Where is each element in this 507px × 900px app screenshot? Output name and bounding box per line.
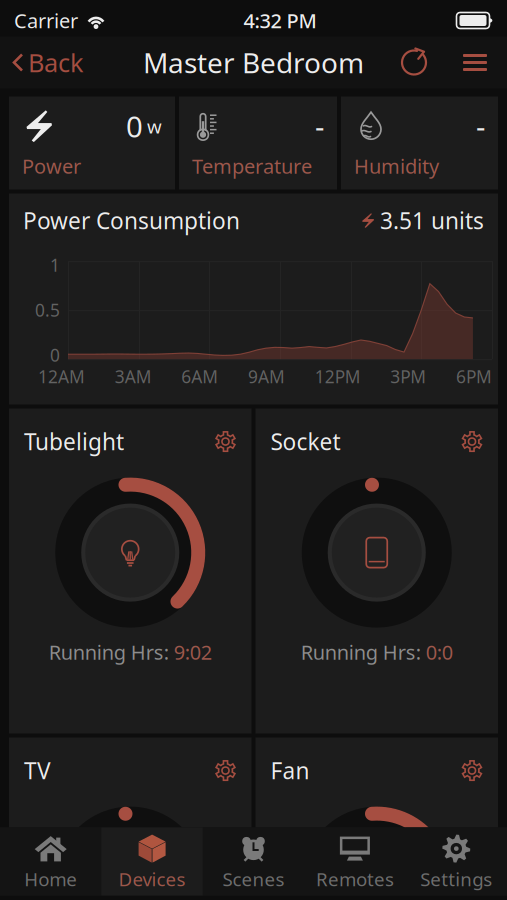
staticText: 1 [50,254,60,277]
staticText: - [315,107,324,146]
staticText: 9:02 [174,639,212,665]
staticText: Master Bedroom [143,44,364,81]
staticText: 3AM [115,365,152,388]
button[interactable]: - [179,96,337,189]
staticText: Remotes [316,867,394,891]
button[interactable]: Refresh [389,36,439,88]
staticText: 0:0 [426,639,453,665]
staticText: 6AM [181,365,218,388]
staticText: 6PM [456,365,492,388]
button[interactable]: Remotes [304,827,406,895]
staticText: w [147,114,162,139]
staticText: Scenes [222,867,284,891]
button[interactable]: Menu [453,36,497,88]
staticText: 3PM [390,365,426,388]
staticText: Power Consumption [23,205,240,236]
staticText: 0 [126,107,143,146]
button[interactable]: - [341,96,498,189]
button[interactable]: Devices [101,827,203,895]
button[interactable]: Tubelight settings [214,431,236,453]
staticText: Settings [420,867,492,891]
staticText: Tubelight [24,426,124,457]
staticText: Carrier [14,7,78,34]
staticText: 4:32 PM [243,7,316,34]
button[interactable]: Scenes [203,827,304,895]
staticText: Temperature [192,153,312,179]
staticText: Running Hrs: [301,639,421,665]
button[interactable]: Home [0,827,101,895]
staticText: 0.5 [35,299,60,322]
button[interactable]: Settings [406,827,507,895]
button[interactable]: Socket settings [461,431,483,453]
staticText: - [476,107,485,146]
staticText: TV [24,755,51,786]
button[interactable]: 0 [9,96,175,189]
staticText: Home [24,867,77,891]
button[interactable]: Back [0,36,96,88]
staticText: Running Hrs: [49,639,169,665]
staticText: 0 [50,344,60,367]
staticText: Humidity [354,153,439,179]
button[interactable]: Fan settings [461,760,483,782]
staticText: 3.51 units [380,205,484,236]
button[interactable]: TV settings [214,760,236,782]
staticText: Back [28,46,84,79]
staticText: Power [22,153,81,179]
staticText: 12AM [38,365,85,388]
staticText: Fan [270,755,309,786]
staticText: 12PM [315,365,361,388]
staticText: 9AM [248,365,285,388]
staticText: Devices [119,867,186,891]
staticText: Socket [270,426,340,457]
